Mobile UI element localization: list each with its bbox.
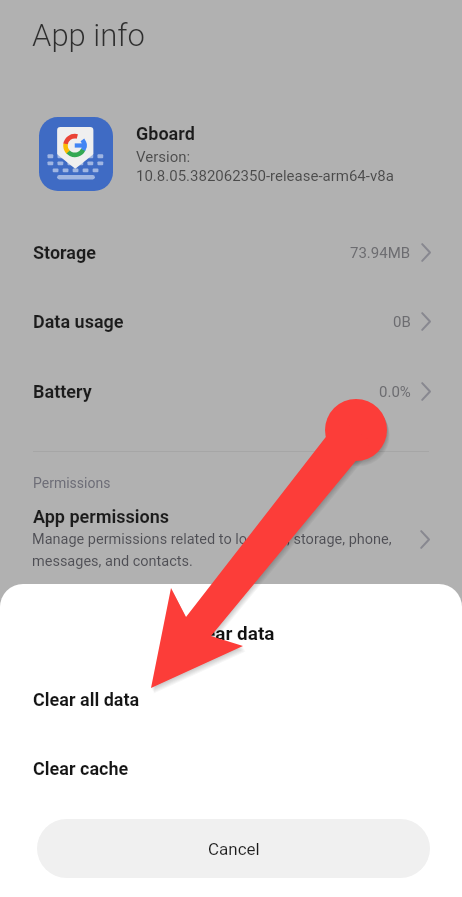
staticText: Storage <box>33 242 97 263</box>
button[interactable]: Clear all data <box>0 675 462 723</box>
button[interactable]: Data usage <box>0 287 462 356</box>
staticText: 0B <box>393 313 411 331</box>
staticText: 0.0% <box>379 383 411 401</box>
button[interactable]: Storage <box>0 218 462 287</box>
button[interactable]: Cancel <box>37 819 430 878</box>
staticText: Manage permissions related to location, … <box>32 531 392 569</box>
button[interactable]: Clear cache <box>0 744 462 792</box>
staticText: Clear all data <box>33 689 140 710</box>
staticText: Version: 10.8.05.382062350-release-arm64… <box>136 148 394 184</box>
staticText: Battery <box>33 381 92 402</box>
staticText: Permissions <box>33 475 111 491</box>
button[interactable]: Battery <box>0 357 462 426</box>
staticText: Data usage <box>33 311 124 332</box>
staticText: 73.94MB <box>350 244 411 262</box>
staticText: Clear data <box>0 622 462 644</box>
staticText: Gboard <box>136 123 195 144</box>
button[interactable]: App permissions <box>0 503 462 577</box>
staticText: App permissions <box>33 506 170 527</box>
staticText: Clear cache <box>33 758 129 779</box>
staticText: Cancel <box>208 839 260 859</box>
staticText: App info <box>32 17 145 53</box>
